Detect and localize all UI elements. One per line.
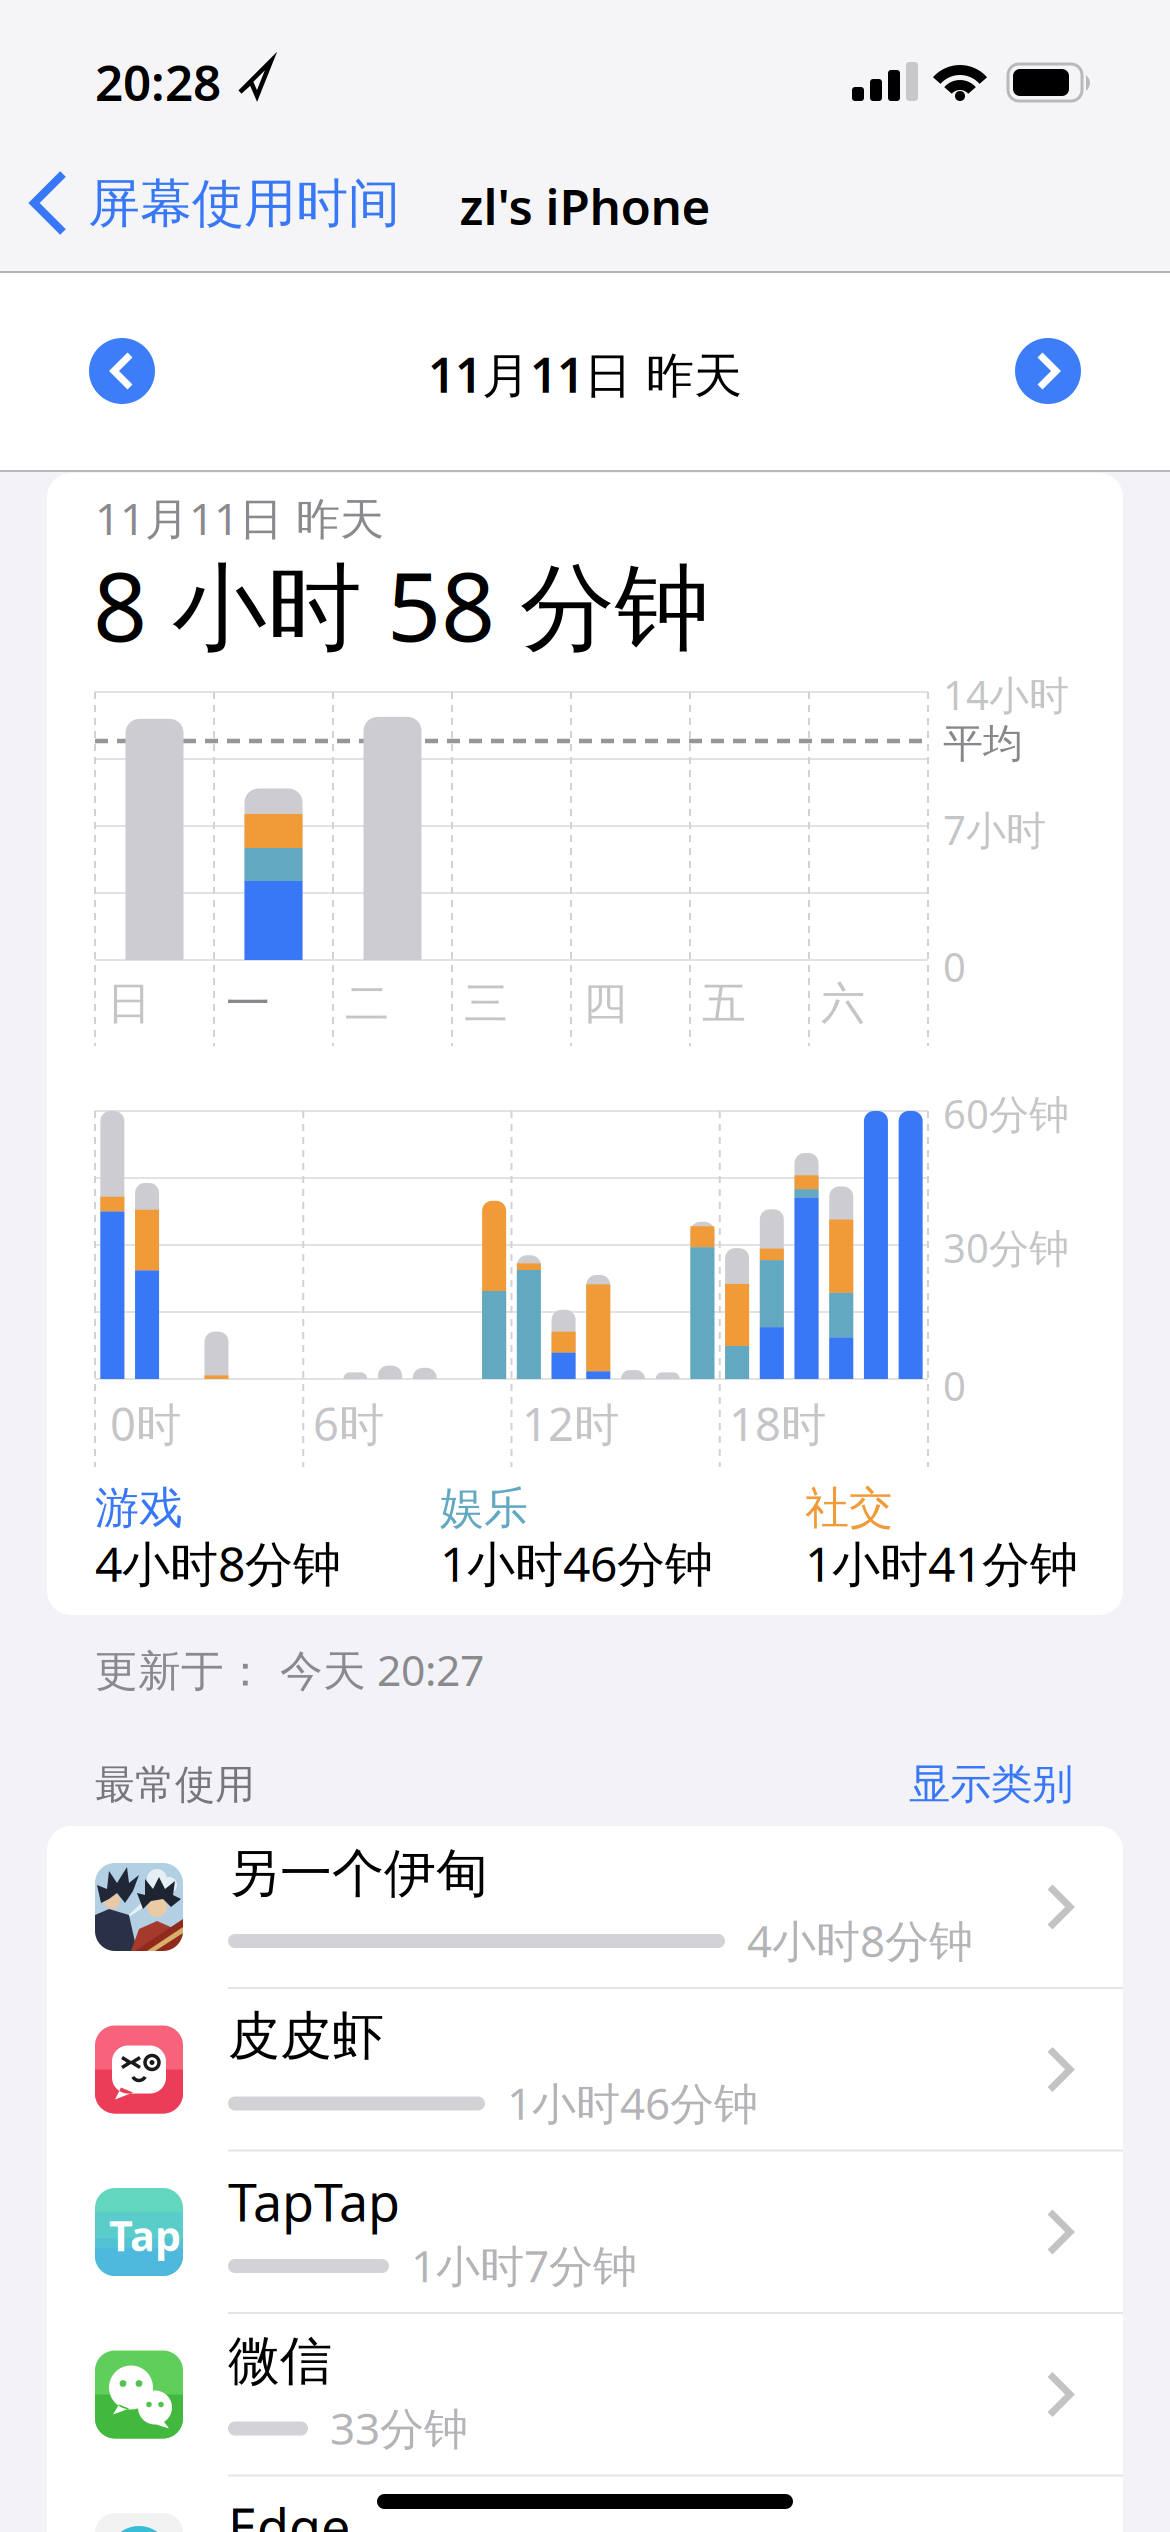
staticText: 8 小时 58 分钟 <box>93 542 710 668</box>
staticText: Edge <box>228 2492 350 2532</box>
staticText: 1小时41分钟 <box>805 1531 1078 1595</box>
staticText: 四 <box>583 977 627 1031</box>
staticText: 12时 <box>522 1393 619 1454</box>
staticText: 社交 <box>805 1481 893 1535</box>
staticText: 0 <box>943 1359 966 1412</box>
staticText: TapTap <box>228 2167 400 2236</box>
staticText: 4小时8分钟 <box>747 1911 973 1969</box>
staticText: 平均 <box>943 719 1023 768</box>
staticText: 显示类别 <box>909 1759 1073 1810</box>
button[interactable]: 显示类别 <box>909 1757 1099 1811</box>
staticText: 三 <box>464 977 508 1031</box>
staticText: 30分钟 <box>943 1221 1069 1274</box>
button[interactable]: 屏幕使用时间 <box>20 151 440 255</box>
staticText: 18时 <box>729 1393 826 1454</box>
button[interactable] <box>1015 338 1081 404</box>
staticText: 6时 <box>313 1393 384 1454</box>
staticText: 日 <box>107 977 151 1031</box>
staticText: 11月11日 昨天 <box>428 342 742 406</box>
button[interactable]: Tap <box>47 2151 1123 2313</box>
button[interactable]: Edge <box>47 2476 1123 2532</box>
staticText: 一 <box>226 977 270 1031</box>
button[interactable]: 另一个伊甸 <box>47 1826 1123 1988</box>
button[interactable] <box>89 338 155 404</box>
staticText: 微信 <box>228 2329 332 2393</box>
staticText: 11月11日 昨天 <box>95 489 384 547</box>
staticText: 7小时 <box>943 803 1046 856</box>
staticText: 14小时 <box>943 668 1069 721</box>
button[interactable]: 皮皮虾 <box>47 1988 1123 2150</box>
staticText: 0 <box>943 940 966 993</box>
staticText: 更新于： 今天 20:27 <box>95 1641 484 1698</box>
staticText: 4小时8分钟 <box>95 1531 341 1595</box>
staticText: 另一个伊甸 <box>228 1842 488 1906</box>
staticText: 娱乐 <box>440 1481 528 1535</box>
staticText: 0时 <box>110 1393 181 1454</box>
staticText: 二 <box>345 977 389 1031</box>
staticText: 六 <box>821 977 865 1031</box>
staticText: 屏幕使用时间 <box>88 172 400 236</box>
staticText: 游戏 <box>95 1481 183 1535</box>
staticText: zl's iPhone <box>459 173 710 238</box>
staticText: Tap <box>109 2208 181 2263</box>
staticText: 五 <box>702 977 746 1031</box>
staticText: 1小时46分钟 <box>507 2073 758 2132</box>
button[interactable]: 微信 <box>47 2313 1123 2475</box>
staticText: 1小时46分钟 <box>440 1531 713 1595</box>
staticText: 33分钟 <box>330 2398 468 2457</box>
staticText: 20:28 <box>95 49 221 114</box>
staticText: 最常使用 <box>95 1760 255 1809</box>
staticText: 60分钟 <box>943 1087 1069 1140</box>
staticText: 皮皮虾 <box>228 2004 384 2068</box>
staticText: 1小时7分钟 <box>411 2236 637 2294</box>
